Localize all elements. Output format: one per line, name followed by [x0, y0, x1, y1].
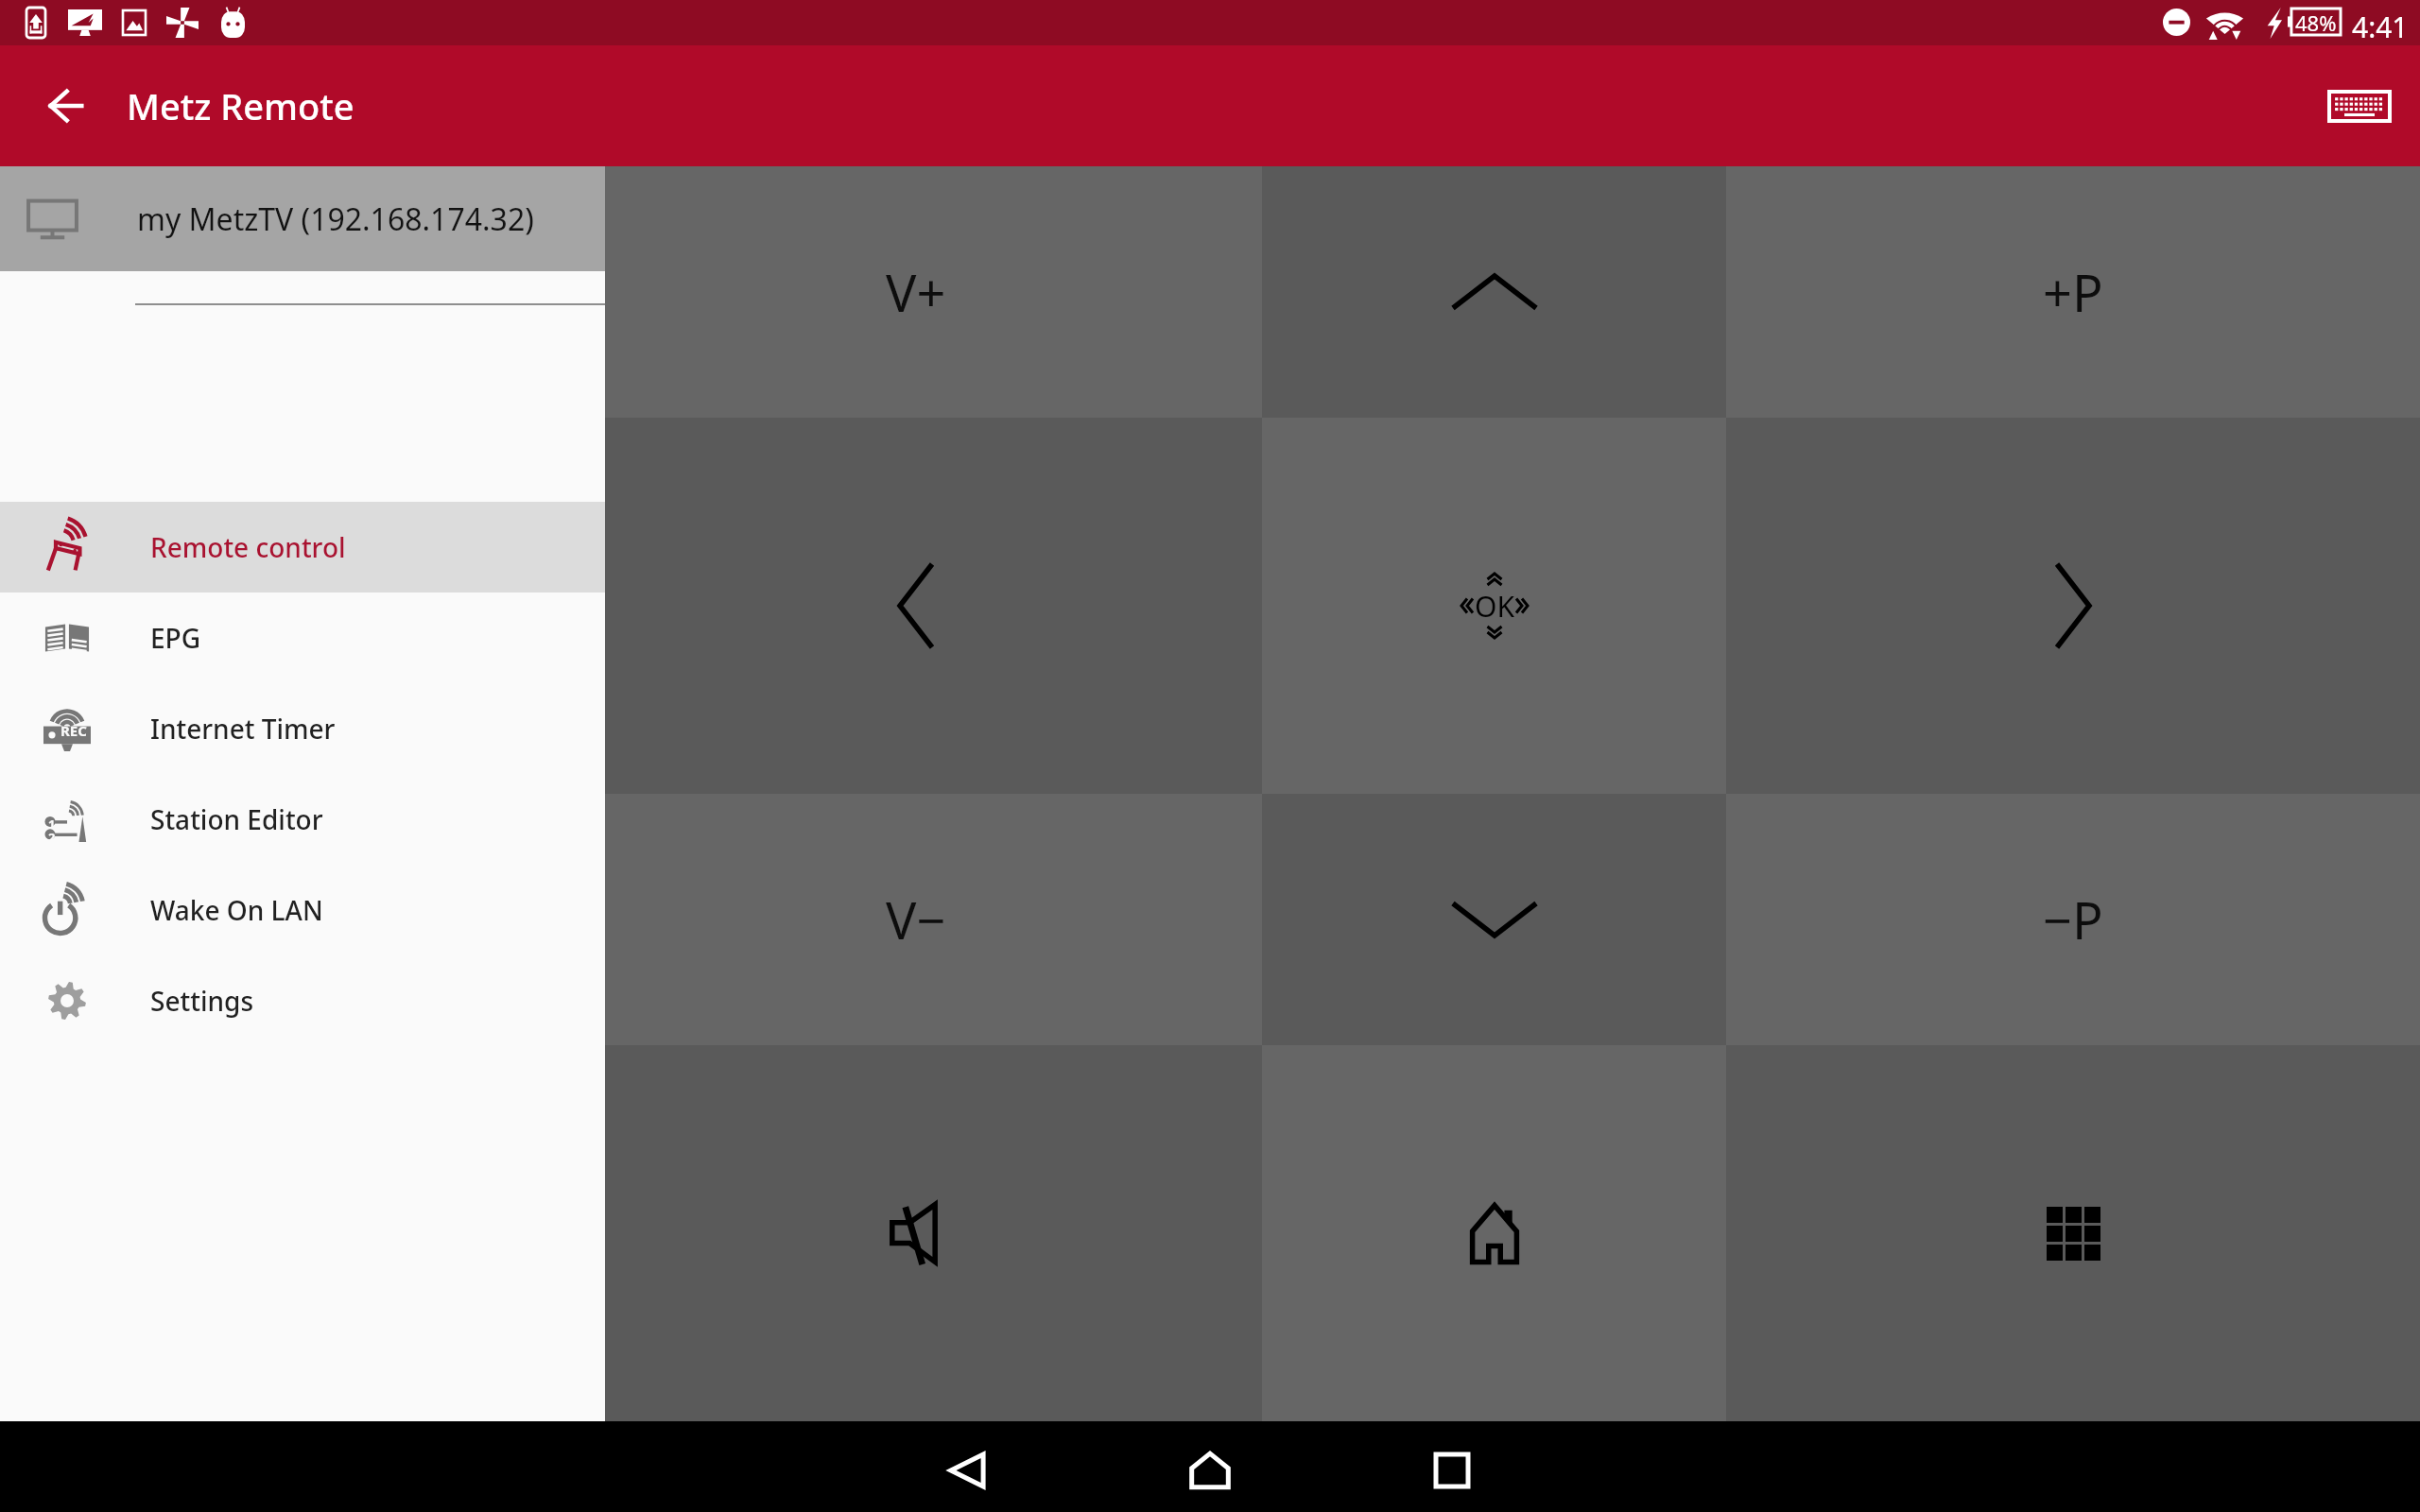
staticText: REC	[60, 721, 87, 740]
staticText: Metz Remote	[127, 81, 354, 130]
staticText: 2	[48, 829, 56, 846]
button[interactable]: Navigate up	[21, 60, 112, 151]
staticText: Remote control	[150, 529, 346, 565]
button[interactable]: Up	[1262, 166, 1726, 418]
button[interactable]: Back	[922, 1425, 1012, 1512]
button[interactable]: Program down	[1726, 794, 2420, 1045]
other: Right	[2057, 564, 2089, 647]
button[interactable]: Wake On LAN	[0, 865, 605, 955]
button[interactable]: Home	[1165, 1425, 1255, 1512]
button[interactable]: Right	[1726, 418, 2420, 794]
staticText: V+	[886, 257, 946, 327]
staticText: Internet Timer	[150, 711, 336, 747]
other: OK	[1457, 568, 1532, 644]
staticText: Wake On LAN	[150, 892, 323, 928]
staticText: Station Editor	[150, 801, 323, 837]
button[interactable]: Home	[1262, 1045, 1726, 1421]
button[interactable]: Down	[1262, 794, 1726, 1045]
other: Down	[1453, 903, 1536, 936]
staticText: 4:41	[2352, 8, 2409, 46]
other: Apps	[2047, 1207, 2100, 1261]
button[interactable]: Volume up	[570, 166, 1262, 418]
other: Up	[1453, 276, 1536, 308]
staticText: 48%	[2295, 9, 2337, 35]
button[interactable]: 1	[0, 774, 605, 865]
staticText: V−	[886, 885, 946, 954]
button[interactable]: Apps	[1726, 1045, 2420, 1421]
other: Left	[900, 564, 932, 647]
button[interactable]: EPG	[0, 593, 605, 683]
button[interactable]: Keyboard	[2314, 60, 2405, 151]
button[interactable]: Left	[570, 418, 1262, 794]
button[interactable]: Settings	[0, 955, 605, 1046]
button[interactable]: Remote control	[0, 502, 605, 593]
staticText: my MetzTV (192.168.174.32)	[137, 198, 534, 240]
staticText: +P	[2043, 257, 2103, 327]
button[interactable]: Mute	[570, 1045, 1262, 1421]
staticText: EPG	[150, 620, 201, 656]
other: Mute	[890, 1202, 942, 1264]
other: Home	[1470, 1203, 1519, 1264]
staticText: Settings	[150, 983, 254, 1019]
button[interactable]: Program up	[1726, 166, 2420, 418]
button[interactable]: Recent apps	[1407, 1425, 1497, 1512]
button[interactable]: OK	[1262, 418, 1726, 794]
button[interactable]: Volume down	[570, 794, 1262, 1045]
button[interactable]: REC	[0, 683, 605, 774]
staticText: 1	[48, 816, 56, 833]
button[interactable]: my MetzTV (192.168.174.32)	[0, 166, 605, 271]
staticText: −P	[2043, 885, 2103, 954]
staticText: OK	[1475, 587, 1514, 626]
